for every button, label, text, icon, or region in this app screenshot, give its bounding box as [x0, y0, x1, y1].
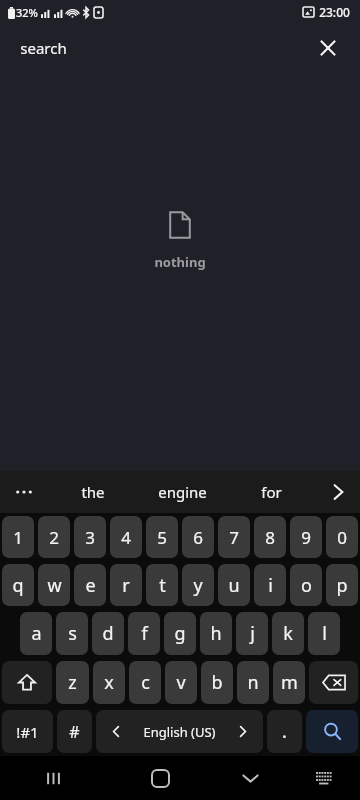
button[interactable]: Hide keyboard — [214, 756, 287, 800]
staticText: t — [159, 573, 166, 598]
staticText: for — [261, 482, 282, 502]
staticText: a — [31, 621, 42, 646]
button[interactable]: 2 — [38, 516, 70, 558]
button[interactable]: 8 — [254, 516, 286, 558]
staticText: the — [81, 482, 105, 502]
button[interactable]: s — [56, 612, 88, 655]
button[interactable]: 9 — [290, 516, 322, 558]
button[interactable]: x — [93, 661, 125, 704]
button[interactable]: . — [267, 710, 302, 753]
button[interactable]: Shift — [2, 661, 52, 704]
staticText: 7 — [229, 526, 239, 549]
staticText: b — [211, 670, 223, 695]
staticText: h — [210, 621, 222, 646]
button[interactable]: d — [92, 612, 124, 655]
button[interactable]: y — [182, 564, 214, 606]
button[interactable]: c — [129, 661, 161, 704]
staticText: l — [322, 621, 327, 646]
staticText: 9 — [301, 526, 311, 549]
staticText: 6 — [193, 526, 203, 549]
button[interactable]: More suggestions — [0, 471, 48, 513]
button[interactable]: Search — [306, 710, 358, 753]
button[interactable]: Change keyboard — [287, 756, 360, 800]
button[interactable]: !#1 — [2, 710, 53, 753]
button[interactable]: 7 — [218, 516, 250, 558]
staticText: c — [141, 670, 150, 695]
button[interactable]: k — [272, 612, 304, 655]
button[interactable]: q — [2, 564, 34, 606]
staticText: y — [193, 573, 203, 598]
staticText: f — [141, 621, 148, 646]
button[interactable]: e — [74, 564, 106, 606]
button[interactable]: p — [326, 564, 358, 606]
button[interactable]: j — [236, 612, 268, 655]
staticText: e — [85, 573, 96, 598]
staticText: # — [69, 721, 80, 743]
button[interactable]: b — [201, 661, 233, 704]
button[interactable]: # — [57, 710, 92, 753]
button[interactable]: Space, English (US) — [96, 710, 263, 753]
staticText: English (US) — [143, 723, 216, 741]
staticText: o — [301, 573, 312, 598]
button[interactable]: w — [38, 564, 70, 606]
staticText: 4 — [121, 526, 131, 549]
button[interactable]: the — [48, 471, 138, 513]
button[interactable]: 4 — [110, 516, 142, 558]
staticText: i — [268, 573, 273, 598]
button[interactable]: a — [20, 612, 52, 655]
staticText: m — [281, 670, 298, 695]
staticText: s — [68, 621, 77, 646]
staticText: p — [336, 573, 348, 598]
staticText: search — [20, 38, 67, 58]
button[interactable]: v — [165, 661, 197, 704]
staticText: d — [102, 621, 114, 646]
staticText: j — [250, 621, 255, 646]
staticText: 23:00 — [319, 4, 350, 20]
button[interactable]: engine — [138, 471, 227, 513]
button[interactable]: m — [273, 661, 305, 704]
button[interactable]: o — [290, 564, 322, 606]
button[interactable]: g — [164, 612, 196, 655]
staticText: engine — [158, 482, 207, 502]
button[interactable]: 1 — [2, 516, 34, 558]
button[interactable]: r — [110, 564, 142, 606]
staticText: 5 — [157, 526, 167, 549]
button[interactable]: 0 — [326, 516, 358, 558]
button[interactable]: u — [218, 564, 250, 606]
button[interactable]: search — [20, 38, 67, 58]
button[interactable]: n — [237, 661, 269, 704]
button[interactable]: Home — [107, 756, 214, 800]
button[interactable]: i — [254, 564, 286, 606]
staticText: 3 — [85, 526, 95, 549]
button[interactable]: 6 — [182, 516, 214, 558]
button[interactable]: Next suggestions — [316, 471, 360, 513]
button[interactable]: Clear search — [310, 30, 346, 66]
staticText: g — [174, 621, 186, 646]
button[interactable]: Backspace — [309, 661, 358, 704]
staticText: !#1 — [16, 722, 39, 742]
staticText: z — [68, 670, 77, 695]
button[interactable]: Recents — [0, 756, 107, 800]
staticText: nothing — [154, 253, 206, 271]
staticText: 8 — [265, 526, 275, 549]
staticText: w — [47, 573, 62, 598]
button[interactable]: h — [200, 612, 232, 655]
staticText: u — [228, 573, 240, 598]
staticText: . — [282, 719, 287, 744]
staticText: r — [122, 573, 130, 598]
staticText: x — [104, 670, 114, 695]
button[interactable]: z — [56, 661, 89, 704]
button[interactable]: for — [227, 471, 316, 513]
staticText: 1 — [13, 526, 23, 549]
staticText: v — [176, 670, 186, 695]
staticText: k — [283, 621, 293, 646]
staticText: 32% — [16, 5, 38, 20]
staticText: n — [247, 670, 259, 695]
staticText: q — [12, 573, 24, 598]
button[interactable]: 5 — [146, 516, 178, 558]
button[interactable]: t — [146, 564, 178, 606]
button[interactable]: f — [128, 612, 160, 655]
button[interactable]: l — [308, 612, 340, 655]
button[interactable]: 3 — [74, 516, 106, 558]
staticText: 0 — [337, 526, 347, 549]
